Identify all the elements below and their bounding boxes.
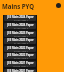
staticText: JEE Main 2023 Paper bbox=[7, 31, 34, 35]
staticText: 24 Jan Shift 1 bbox=[14, 19, 28, 21]
staticText: 26 Jun Shift 2 bbox=[14, 57, 28, 59]
staticText: JEE Main 2021 Paper bbox=[7, 61, 34, 65]
button[interactable]: JEE Main 2022 Paper bbox=[4, 53, 36, 59]
staticText: JEE Main 2022 Paper bbox=[7, 53, 34, 57]
staticText: JEE Main 2024 Paper bbox=[7, 23, 34, 27]
button[interactable]: JEE Main 2023 Paper bbox=[4, 31, 36, 37]
staticText: JEE Main 2021 Paper bbox=[7, 69, 34, 72]
button[interactable]: JEE Main 2024 Paper bbox=[4, 15, 36, 21]
button[interactable]: JEE Main 2022 Paper bbox=[4, 46, 36, 52]
button[interactable]: JEE Main 2021 Paper bbox=[4, 69, 36, 72]
staticText: JEE Main 2023 Paper bbox=[7, 38, 34, 42]
staticText: JEE Main 2024 Paper bbox=[7, 15, 34, 19]
staticText: 24 Jun Shift 1 bbox=[14, 50, 28, 52]
button[interactable]: JEE Main 2021 Paper bbox=[4, 61, 36, 67]
button[interactable]: JEE Main 2023 Paper bbox=[4, 38, 36, 44]
staticText: 25 Feb Shift 1 bbox=[13, 65, 28, 67]
staticText: JEE Main 2022 Paper bbox=[7, 46, 34, 50]
staticText: 27 Jan Shift 2 bbox=[14, 27, 28, 29]
button[interactable]: JEE Main 2024 Paper bbox=[4, 23, 36, 29]
staticText: 31 Jan Shift 2 bbox=[14, 42, 28, 44]
staticText: Mains PYQ bbox=[2, 2, 35, 10]
staticText: 29 Jan Shift 1 bbox=[14, 35, 28, 37]
button[interactable]: Profile bbox=[56, 3, 61, 8]
